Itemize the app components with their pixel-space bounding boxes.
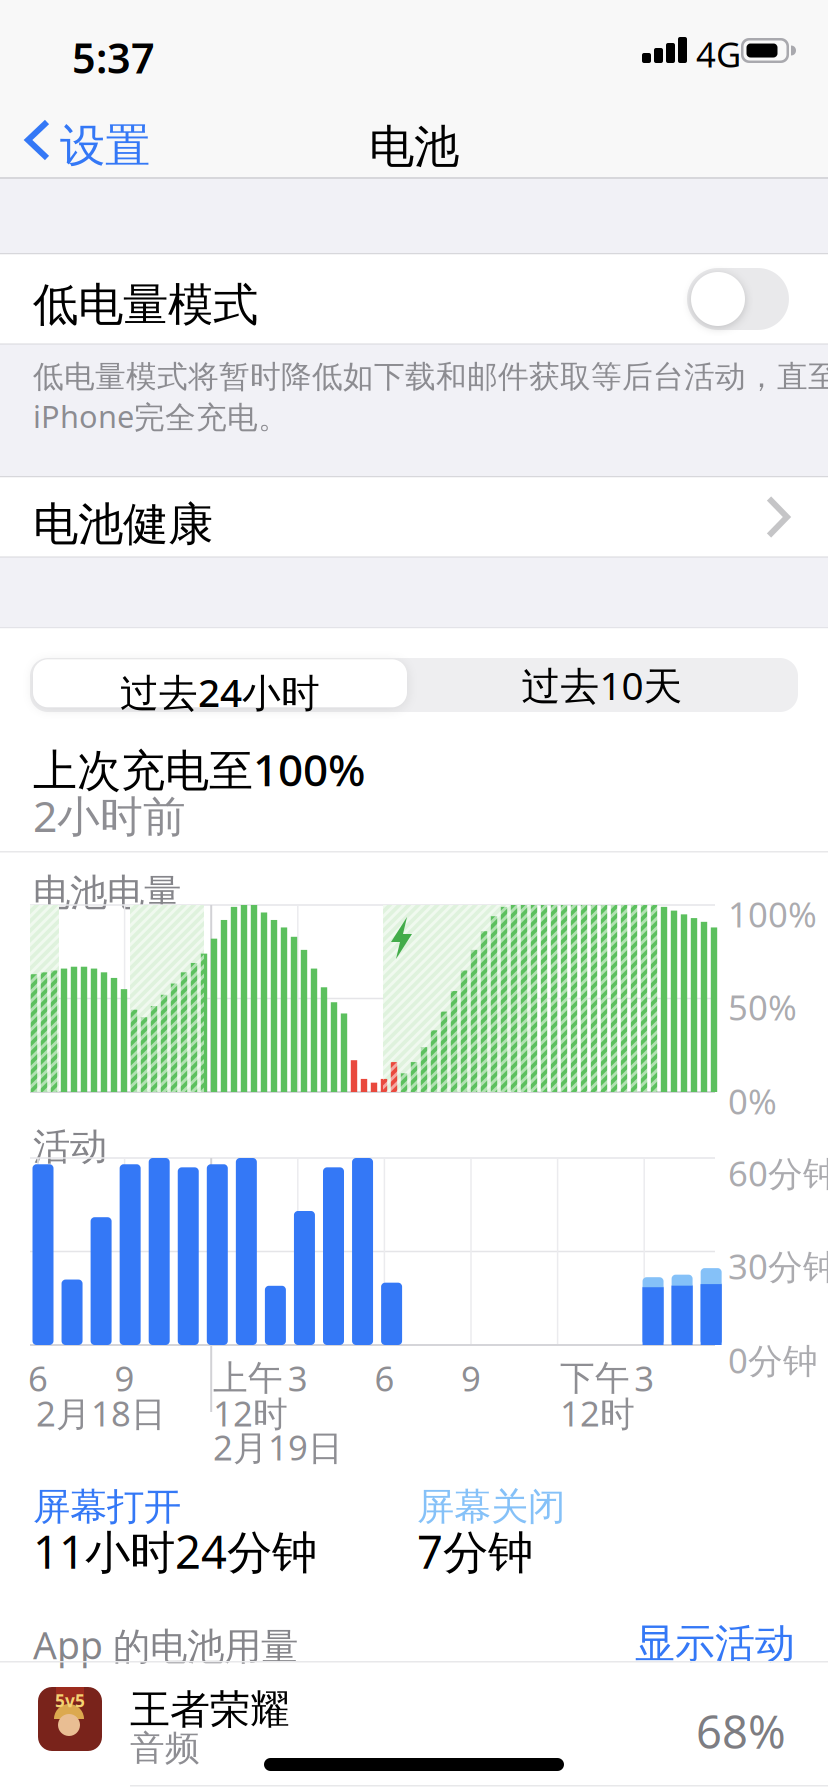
staticText: 屏幕打开 (33, 1484, 181, 1530)
staticText: 显示活动 (635, 1619, 795, 1668)
button[interactable]: 5v5 (0, 1679, 828, 1783)
button[interactable]: 过去24小时 (33, 661, 407, 709)
staticText: 12时 (213, 1390, 288, 1436)
staticText: 2月18日 (36, 1390, 166, 1436)
staticText: App 的电池用量 (33, 1620, 298, 1670)
staticText: 设置 (60, 118, 150, 174)
staticText: 68% (696, 1701, 786, 1761)
staticText: 6 (28, 1355, 48, 1401)
staticText: 11小时24分钟 (33, 1521, 317, 1581)
staticText: 过去24小时 (120, 666, 320, 718)
staticText: 低电量模式 (33, 277, 258, 333)
staticText: 2月19日 (213, 1424, 343, 1470)
staticText: 王者荣耀 (130, 1685, 290, 1734)
staticText: 下午 (560, 1357, 630, 1400)
staticText: 2小时前 (33, 787, 186, 844)
staticText: 6 (374, 1355, 394, 1401)
button[interactable]: 设置 (24, 118, 164, 178)
staticText: 5v5 (55, 1689, 85, 1712)
staticText: 电池电量 (33, 870, 181, 916)
button[interactable]: 显示活动 (595, 1619, 795, 1668)
staticText: 5:37 (72, 30, 155, 85)
staticText: 9 (461, 1355, 481, 1401)
staticText: 60分钟 (728, 1150, 828, 1196)
staticText: 上午 (213, 1357, 283, 1400)
button[interactable]: 过去10天 (415, 661, 789, 709)
staticText: 9 (115, 1355, 135, 1401)
staticText: 活动 (33, 1124, 107, 1170)
staticText: 电池健康 (33, 496, 213, 552)
button[interactable]: 电池健康 (0, 477, 828, 556)
staticText: 音频 (130, 1727, 200, 1770)
staticText: 3 (634, 1355, 654, 1401)
staticText: 100% (728, 891, 817, 937)
staticText: 3 (288, 1355, 308, 1401)
staticText: 12时 (560, 1390, 635, 1436)
staticText: 0分钟 (728, 1337, 818, 1383)
staticText: 电池 (369, 119, 459, 175)
staticText: 30分钟 (728, 1243, 828, 1289)
staticText: 4G (696, 31, 741, 77)
staticText: 屏幕关闭 (417, 1484, 565, 1530)
button[interactable] (687, 268, 789, 330)
staticText: 上次充电至100% (33, 740, 365, 798)
staticText: 50% (728, 984, 797, 1030)
staticText: 0% (728, 1078, 777, 1124)
staticText: 低电量模式将暂时降低如下载和邮件获取等后台活动，直至 iPhone完全充电。 (33, 358, 828, 437)
staticText: 7分钟 (417, 1521, 533, 1581)
staticText: 过去10天 (521, 659, 682, 711)
